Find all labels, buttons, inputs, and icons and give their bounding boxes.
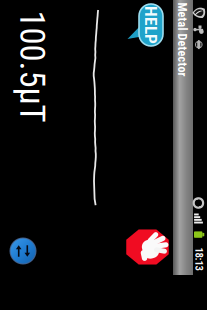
button[interactable]: Change range	[7, 235, 39, 267]
button[interactable]: Help	[127, 3, 163, 47]
staticText: 100.5μT	[0, 46, 88, 87]
staticText: Metal Detector	[145, 32, 207, 47]
button[interactable]: Stop	[121, 225, 173, 269]
staticText: HELP	[132, 15, 170, 35]
staticText: 18:13	[187, 253, 207, 265]
